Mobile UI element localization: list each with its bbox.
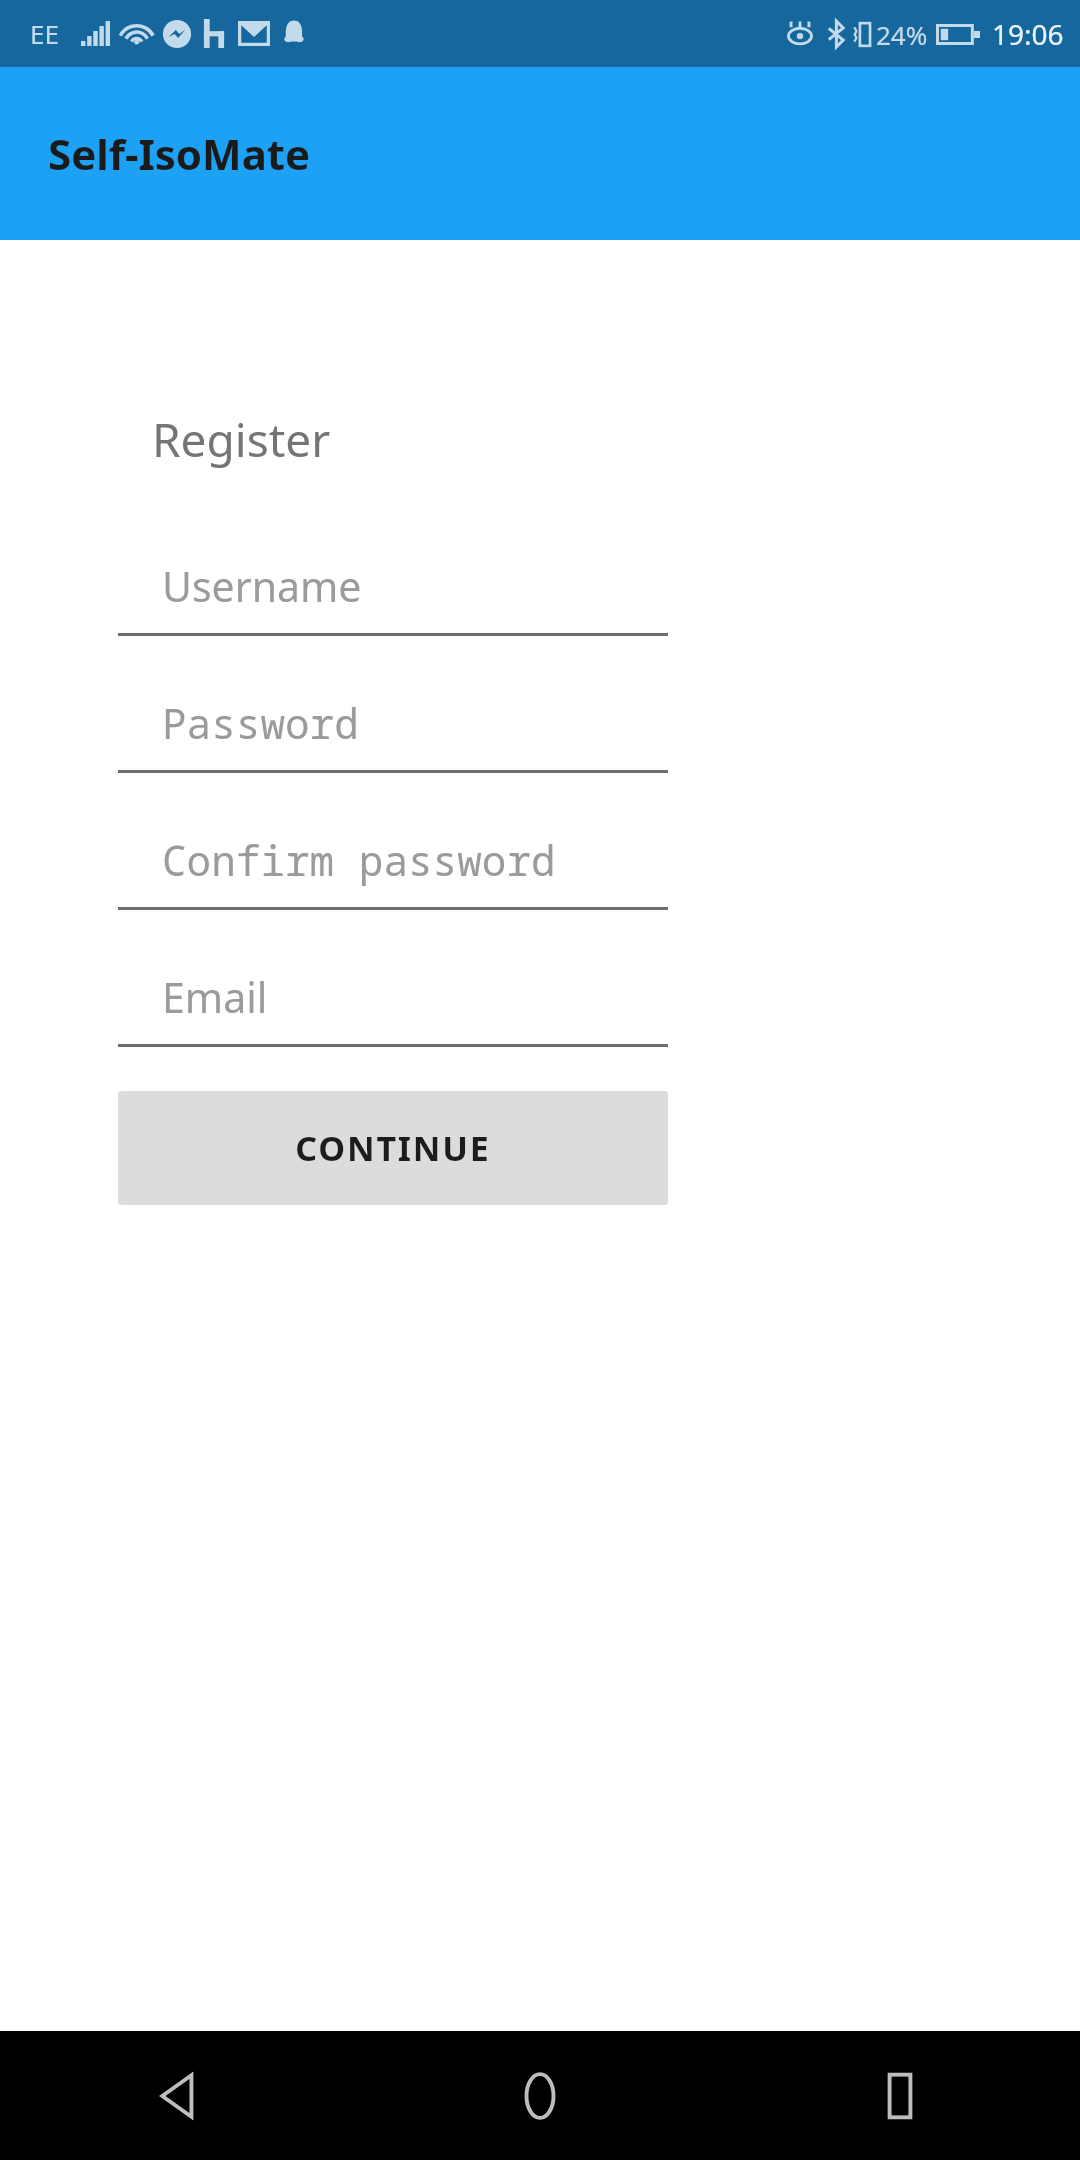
staticText: 19:06 bbox=[992, 15, 1064, 53]
staticText: CONTINUE bbox=[295, 1125, 491, 1171]
button[interactable]: CONTINUE bbox=[118, 1091, 668, 1205]
button[interactable]: Password bbox=[118, 636, 668, 773]
staticText: Confirm password bbox=[162, 832, 556, 888]
button[interactable]: Confirm password bbox=[118, 773, 668, 910]
staticText: Email bbox=[162, 969, 268, 1025]
staticText: 24% bbox=[876, 17, 928, 52]
button[interactable]: Back bbox=[0, 2031, 360, 2160]
button[interactable]: Recent apps bbox=[720, 2031, 1080, 2160]
button[interactable]: Email bbox=[118, 910, 668, 1047]
button[interactable]: Username bbox=[118, 499, 668, 636]
button[interactable]: Home bbox=[360, 2031, 720, 2160]
staticText: Self-IsoMate bbox=[48, 125, 311, 182]
staticText: EE bbox=[30, 16, 59, 51]
staticText: Username bbox=[162, 558, 362, 614]
staticText: Register bbox=[152, 408, 331, 471]
staticText: Password bbox=[162, 695, 359, 751]
